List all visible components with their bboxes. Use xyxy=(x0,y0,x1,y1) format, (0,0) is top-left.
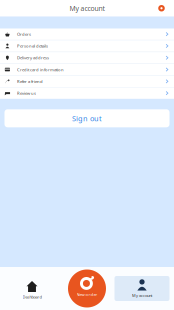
staticText: Dashboard xyxy=(22,294,41,300)
button[interactable]: New order xyxy=(59,269,114,307)
button[interactable]: Refer a friend xyxy=(0,76,174,87)
staticText: Delivery address xyxy=(17,55,49,60)
staticText: Refer a friend xyxy=(17,78,43,84)
staticText: Credit card information xyxy=(17,67,64,72)
button[interactable]: Review us xyxy=(0,87,174,99)
staticText: My account xyxy=(69,4,104,13)
staticText: New order xyxy=(76,291,97,297)
staticText: Review us xyxy=(17,90,36,96)
button[interactable]: Dashboard xyxy=(4,267,59,310)
button[interactable]: Delivery address xyxy=(0,52,174,64)
button[interactable]: Credit card information xyxy=(0,64,174,76)
button[interactable]: Orders xyxy=(0,28,174,40)
staticText: Personal details xyxy=(17,43,48,49)
staticText: Orders xyxy=(17,31,31,37)
staticText: Sign out xyxy=(72,113,102,123)
button[interactable]: Sign out xyxy=(4,109,169,127)
button[interactable]: Basket xyxy=(155,2,167,14)
staticText: My account xyxy=(132,293,152,298)
button[interactable]: Personal details xyxy=(0,40,174,52)
button[interactable]: My account xyxy=(114,276,169,301)
